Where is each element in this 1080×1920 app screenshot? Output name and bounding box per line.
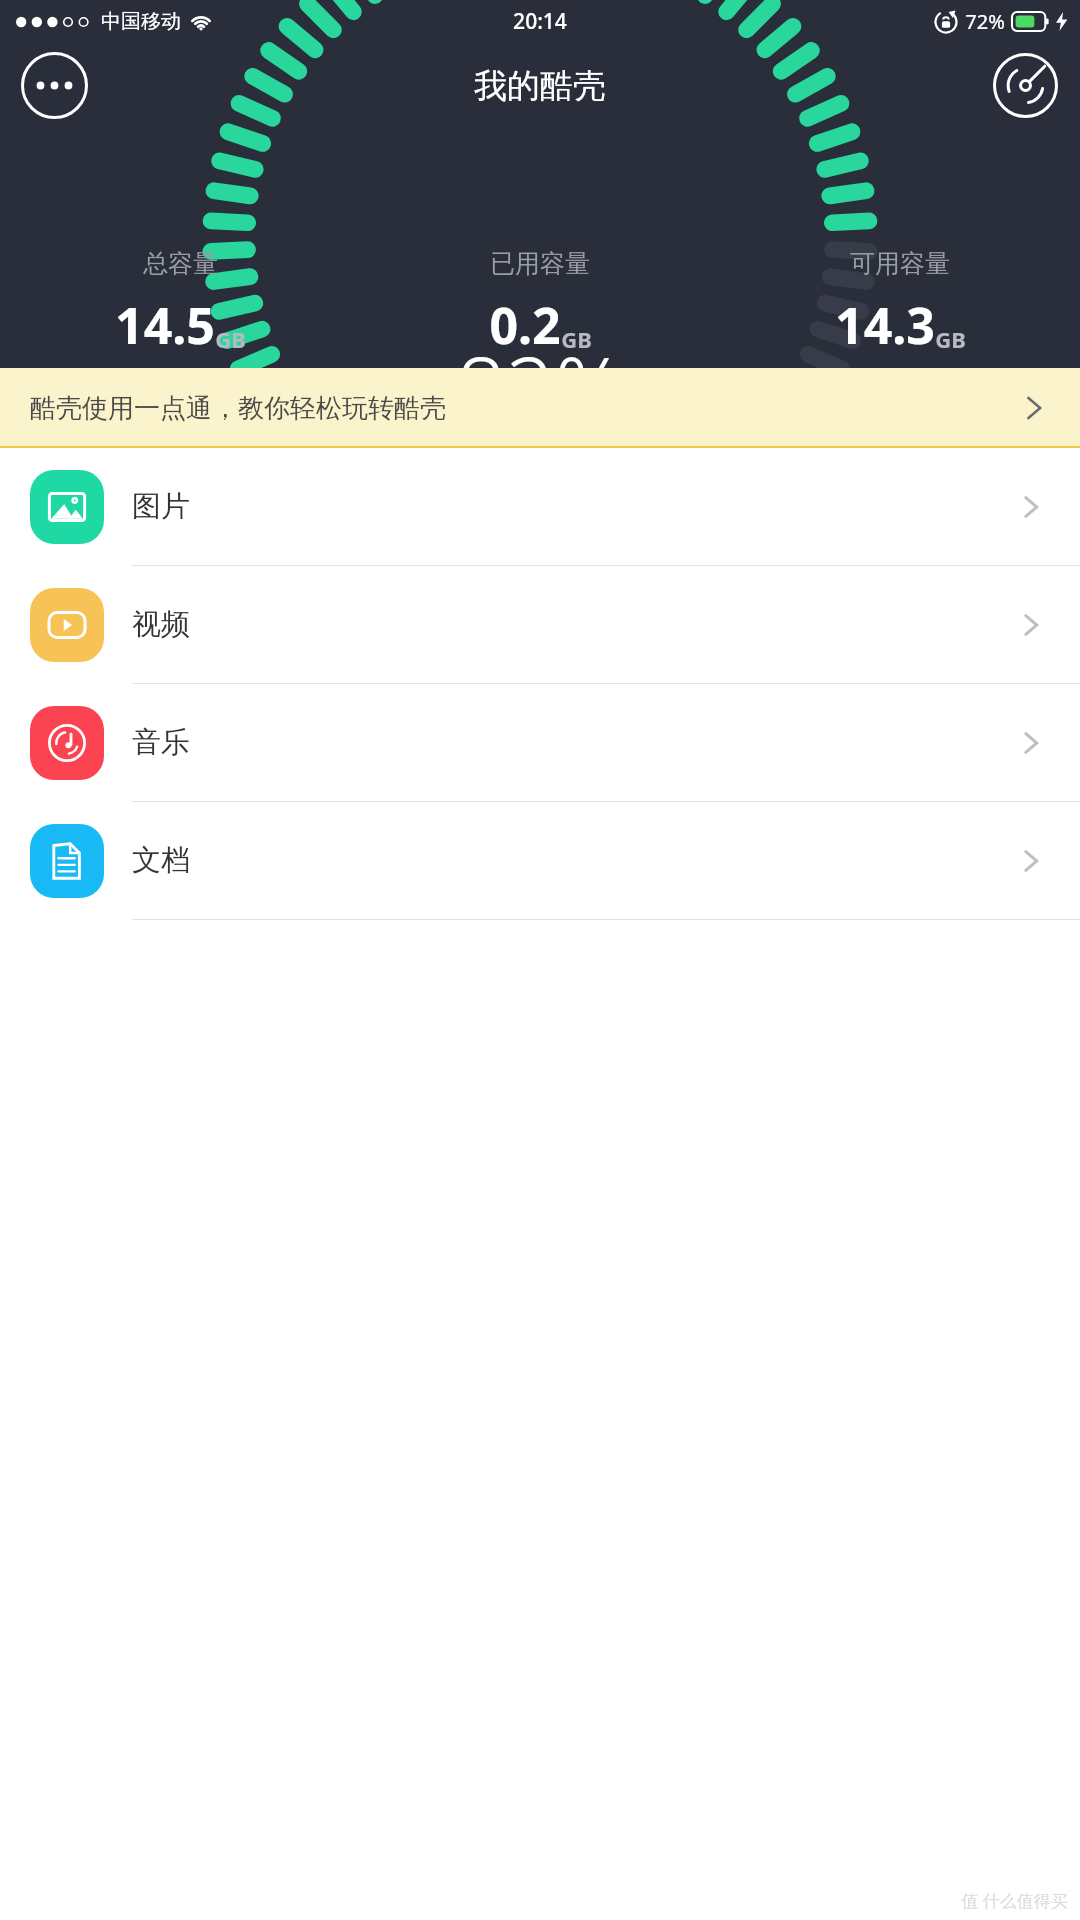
staticText: 72% [965,8,1005,35]
button[interactable]: 文档 [0,802,1080,919]
staticText: 可用容量 [850,248,950,279]
staticText: 14.5 [115,291,215,359]
staticText: 14.3 [835,291,935,359]
staticText: 图片 [132,488,190,525]
staticText: 已用容量 [490,248,590,279]
button[interactable]: Device status [991,51,1060,120]
staticText: 20:14 [513,7,567,36]
button[interactable]: 视频 [0,566,1080,683]
staticText: 音乐 [132,724,190,761]
staticText: 我的酷壳 [474,65,606,107]
button[interactable]: 图片 [0,448,1080,565]
staticText: 总容量 [143,248,218,279]
staticText: GB [561,324,592,354]
staticText: 文档 [132,842,190,879]
staticText: GB [215,324,246,354]
staticText: GB [935,324,966,354]
button[interactable]: 酷壳使用一点通，教你轻松玩转酷壳 [0,368,1080,448]
button[interactable]: More options [20,51,89,120]
staticText: 视频 [132,606,190,643]
staticText: 酷壳使用一点通，教你轻松玩转酷壳 [30,392,446,425]
staticText: 中国移动 [101,9,181,34]
button[interactable]: 音乐 [0,684,1080,801]
staticText: 值 什么值得买 [961,1889,1068,1912]
staticText: 82% [456,328,625,368]
staticText: 0.2 [489,291,561,359]
